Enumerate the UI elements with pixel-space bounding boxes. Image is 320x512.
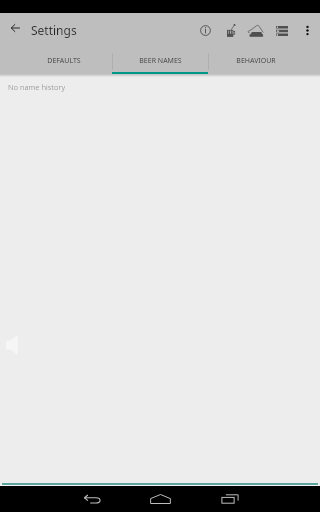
button[interactable]: DEFAULTS xyxy=(16,48,112,74)
button[interactable]: BEER NAMES xyxy=(112,48,208,74)
staticText: No name history xyxy=(8,82,65,92)
button[interactable]: Navigate up xyxy=(5,18,25,38)
button[interactable]: BEHAVIOUR xyxy=(208,48,304,74)
button[interactable]: Recipes xyxy=(270,13,293,48)
staticText: DEFAULTS xyxy=(47,56,81,66)
button[interactable]: Home xyxy=(145,486,175,512)
button[interactable]: Information xyxy=(195,13,216,48)
button[interactable]: Hops xyxy=(245,13,267,48)
button[interactable]: Back xyxy=(77,486,107,512)
button[interactable]: Recent apps xyxy=(215,486,245,512)
button[interactable]: Beer styles xyxy=(220,13,241,48)
staticText: BEHAVIOUR xyxy=(236,56,276,66)
staticText: BEER NAMES xyxy=(139,56,182,66)
button[interactable]: More options xyxy=(295,13,319,48)
staticText: Settings xyxy=(31,22,77,38)
